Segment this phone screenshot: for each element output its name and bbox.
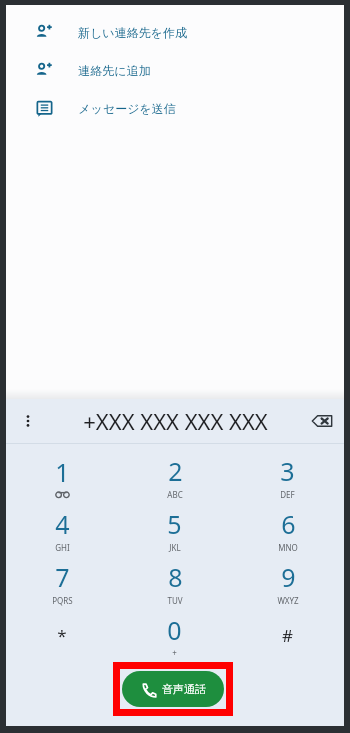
staticText: 2: [168, 454, 183, 488]
button[interactable]: 2: [118, 450, 231, 503]
staticText: PQRS: [52, 595, 73, 606]
staticText: WXYZ: [277, 595, 299, 606]
button[interactable]: Backspace: [300, 399, 344, 443]
button[interactable]: メッセージを送信: [6, 89, 344, 127]
staticText: TUV: [167, 595, 183, 606]
staticText: JKL: [169, 542, 181, 553]
staticText: +: [172, 647, 177, 658]
staticText: 6: [281, 507, 296, 541]
staticText: 8: [168, 560, 183, 594]
staticText: 7: [55, 560, 70, 594]
staticText: 9: [281, 560, 296, 594]
button[interactable]: 3: [231, 450, 344, 503]
staticText: 1: [55, 455, 70, 489]
staticText: 音声通話: [162, 682, 206, 696]
staticText: DEF: [280, 489, 295, 500]
button[interactable]: #: [231, 609, 344, 662]
staticText: 0: [167, 613, 182, 647]
staticText: 新しい連絡先を作成: [78, 25, 187, 40]
button[interactable]: 5: [118, 503, 231, 556]
button[interactable]: 7: [6, 556, 118, 609]
button[interactable]: 8: [118, 556, 231, 609]
staticText: 4: [55, 507, 70, 541]
staticText: ABC: [167, 489, 183, 500]
button[interactable]: More options: [6, 399, 50, 443]
button[interactable]: *: [6, 609, 118, 662]
button[interactable]: 新しい連絡先を作成: [6, 13, 344, 51]
staticText: *: [57, 624, 67, 647]
staticText: MNO: [278, 542, 298, 553]
staticText: 3: [280, 454, 295, 488]
button[interactable]: 0: [118, 609, 231, 662]
button[interactable]: 連絡先に追加: [6, 51, 344, 89]
staticText: メッセージを送信: [78, 101, 176, 116]
staticText: 連絡先に追加: [78, 63, 151, 78]
button[interactable]: 4: [6, 503, 118, 556]
button[interactable]: 9: [231, 556, 344, 609]
button[interactable]: 音声通話: [122, 671, 224, 707]
button[interactable]: 1: [6, 450, 118, 503]
staticText: +XXX XXX XXX XXX: [83, 406, 268, 436]
staticText: 5: [167, 507, 182, 541]
staticText: GHI: [55, 542, 70, 553]
staticText: #: [282, 624, 293, 647]
button[interactable]: 6: [231, 503, 344, 556]
